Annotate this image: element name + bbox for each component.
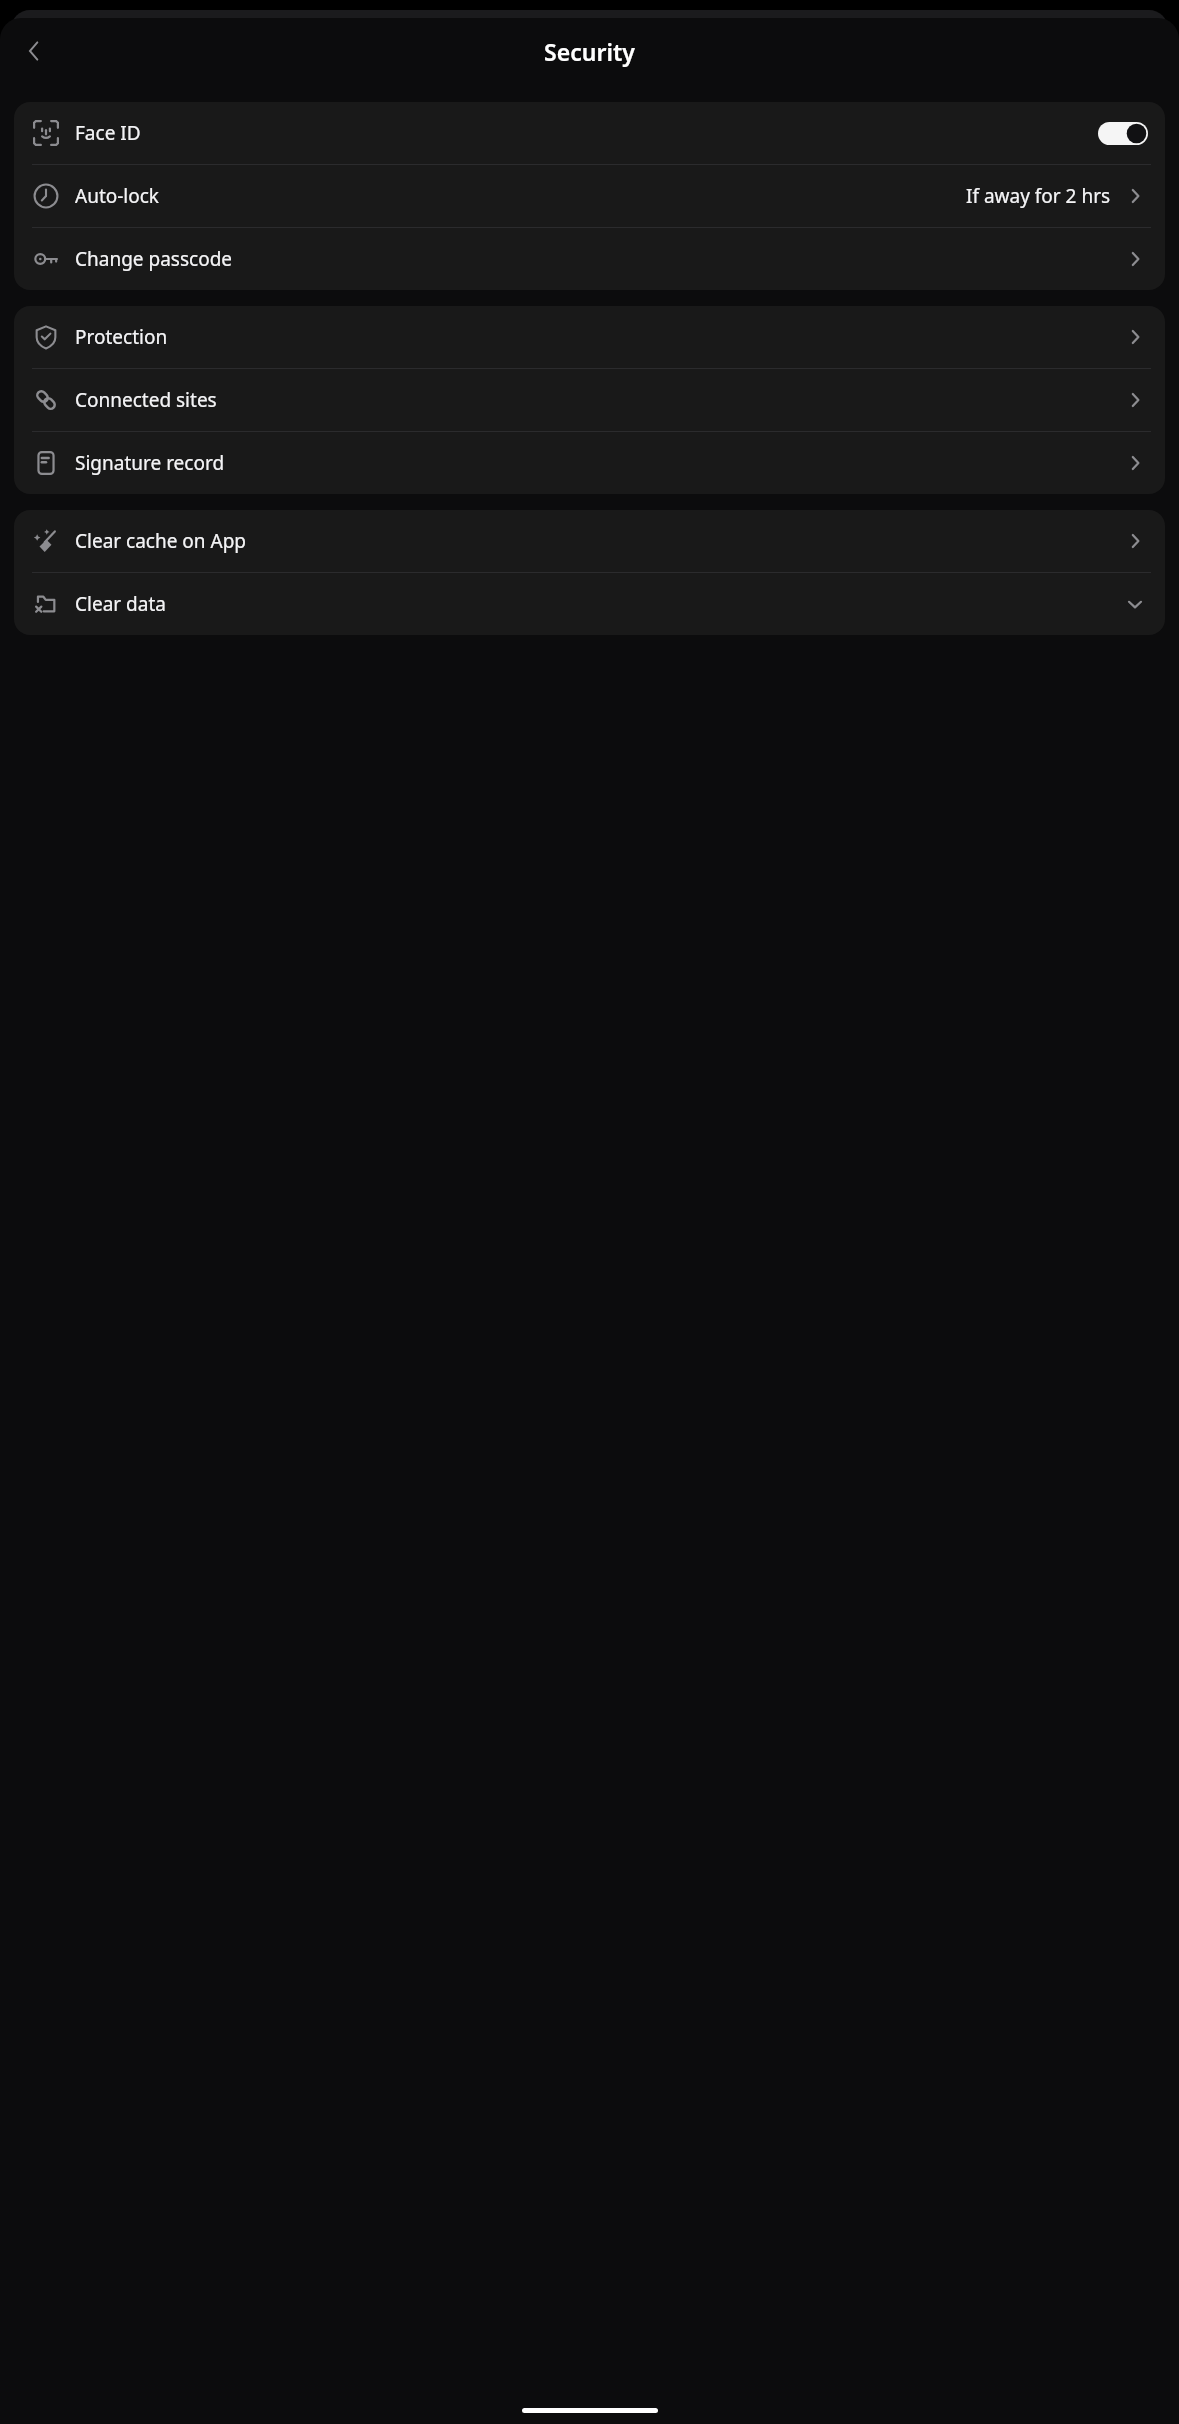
staticText: Security xyxy=(544,36,635,67)
staticText: Connected sites xyxy=(75,387,217,413)
button[interactable]: Protection xyxy=(14,306,1165,368)
staticText: Auto-lock xyxy=(75,183,160,209)
button[interactable]: Open xyxy=(1122,450,1148,476)
button[interactable]: Open xyxy=(1122,387,1148,413)
staticText: Change passcode xyxy=(75,246,233,272)
button[interactable]: Face ID xyxy=(14,102,1165,164)
button[interactable]: Signature record xyxy=(14,432,1165,494)
staticText: Face ID xyxy=(75,120,141,146)
button[interactable]: Back xyxy=(10,27,58,75)
button[interactable]: Open xyxy=(1122,183,1148,209)
button[interactable]: Connected sites xyxy=(14,369,1165,431)
button[interactable]: Open xyxy=(1122,246,1148,272)
button[interactable]: Change passcode xyxy=(14,228,1165,290)
button[interactable]: Clear cache on App xyxy=(14,510,1165,572)
button[interactable]: Clear data xyxy=(14,573,1165,635)
button[interactable]: Open xyxy=(1122,324,1148,350)
button[interactable]: Open xyxy=(1122,528,1148,554)
button[interactable]: Auto-lock xyxy=(14,165,1165,227)
button[interactable]: Expand xyxy=(1122,591,1148,617)
staticText: Signature record xyxy=(75,450,225,476)
staticText: Clear data xyxy=(75,591,166,617)
staticText: Protection xyxy=(75,324,168,350)
staticText: If away for 2 hrs xyxy=(966,183,1111,209)
button[interactable]: Face ID toggle xyxy=(1098,122,1148,145)
staticText: Clear cache on App xyxy=(75,528,247,554)
